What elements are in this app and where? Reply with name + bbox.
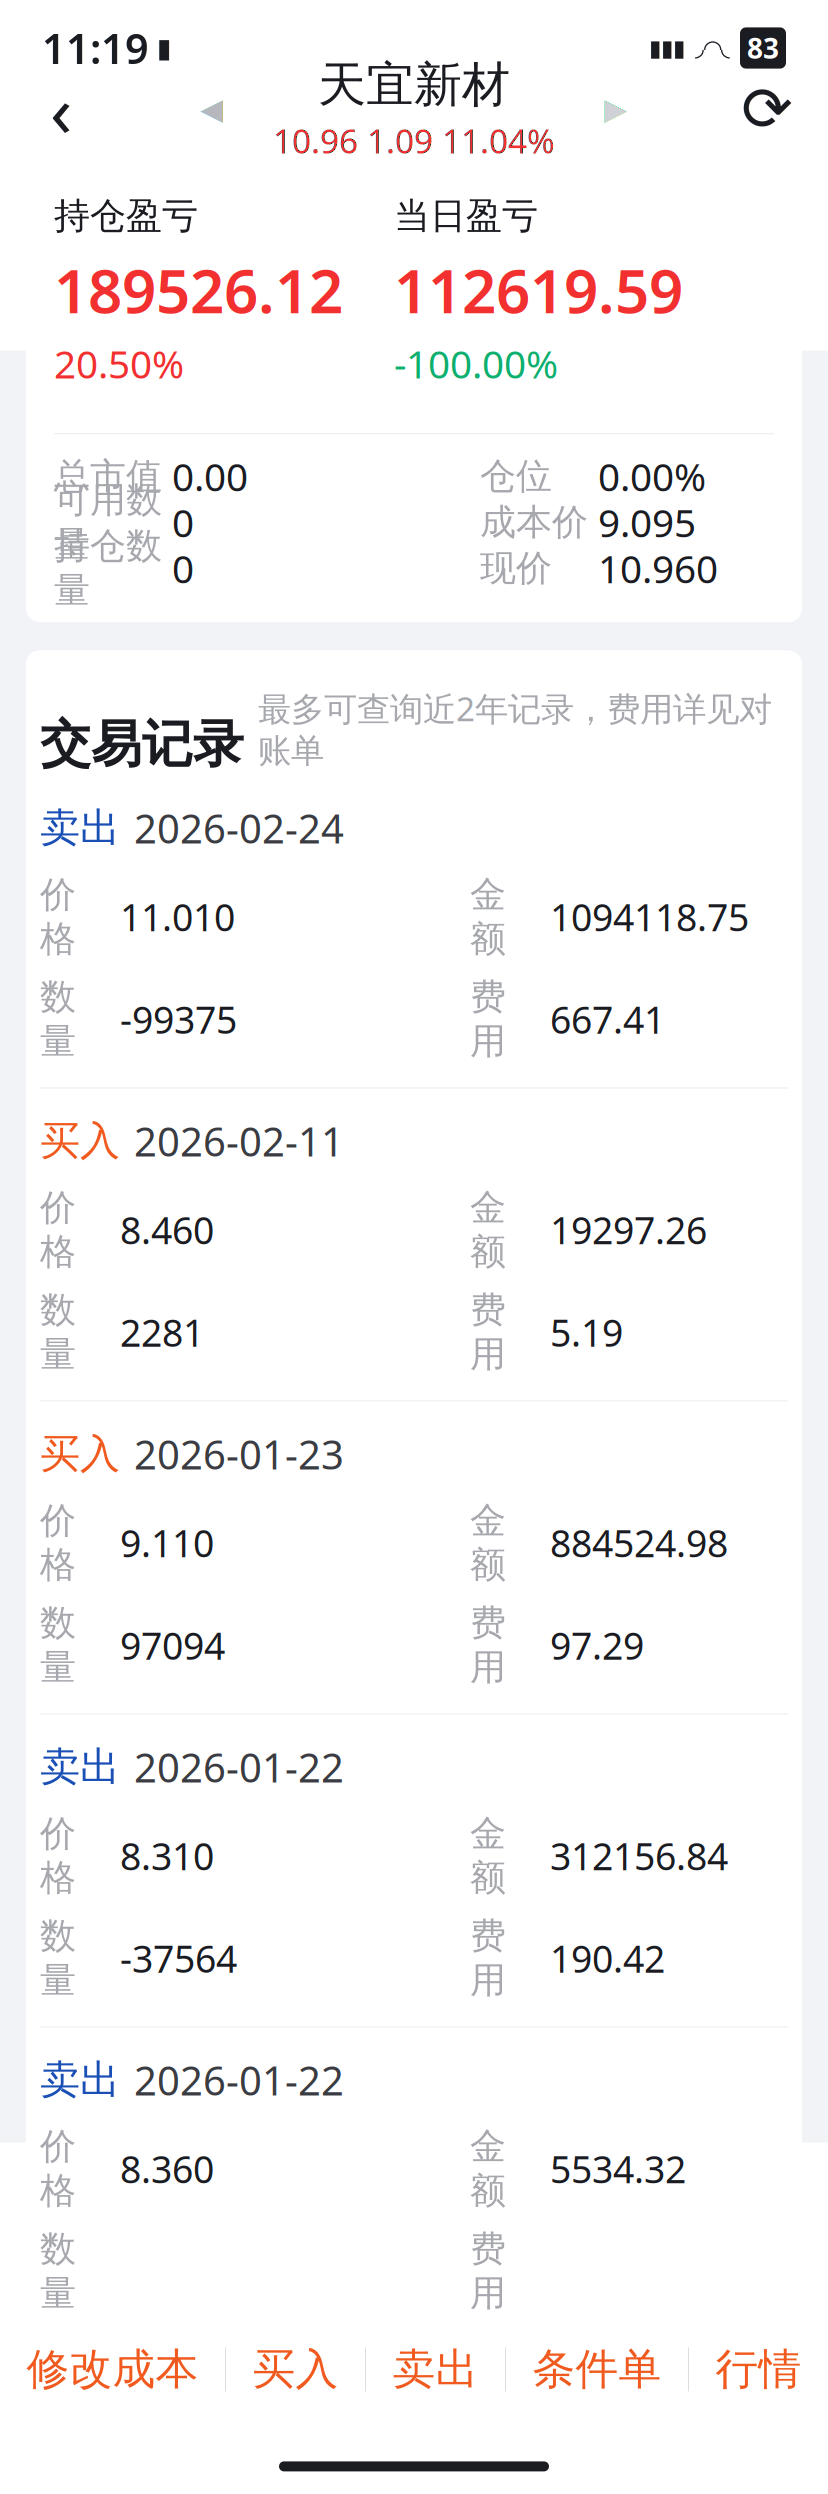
button[interactable]: 行情 xyxy=(715,2323,801,2416)
staticText: 2026-01-22 xyxy=(134,1740,344,1793)
staticText: 费用 xyxy=(470,1601,506,1689)
staticText: 11:19 xyxy=(42,21,149,75)
staticText: 1094118.75 xyxy=(550,892,749,942)
staticText: ▮▮▮ xyxy=(649,35,685,61)
staticText: 667.41 xyxy=(550,994,665,1044)
button[interactable]: Refresh xyxy=(732,74,802,144)
staticText: -37564 xyxy=(120,1933,237,1983)
button[interactable]: 条件单 xyxy=(532,2323,661,2416)
staticText: 费用 xyxy=(470,1914,506,2002)
staticText: -99375 xyxy=(120,994,237,1044)
staticText: 数量 xyxy=(40,1288,76,1376)
staticText: 19297.26 xyxy=(550,1205,707,1255)
staticText: 当日盈亏 xyxy=(394,194,538,238)
staticText: 9.110 xyxy=(120,1518,214,1568)
staticText: 0 xyxy=(172,543,194,594)
staticText: 天宜新材 xyxy=(318,55,510,114)
staticText: 0.00% xyxy=(598,451,706,502)
staticText: 买入 xyxy=(40,1429,120,1478)
button[interactable]: 买入 xyxy=(252,2323,338,2416)
staticText: 金额 xyxy=(470,1498,506,1587)
staticText: 卖出 xyxy=(392,2343,478,2396)
staticText: 11.010 xyxy=(120,892,235,942)
staticText: 价格 xyxy=(40,2124,76,2213)
staticText: 2026-02-11 xyxy=(134,1114,344,1167)
staticText: 金额 xyxy=(470,1186,506,1274)
staticText: 5.19 xyxy=(550,1307,623,1357)
button[interactable]: Previous stock xyxy=(182,79,242,139)
staticText: 卖出 xyxy=(40,1742,120,1791)
staticText: 0 xyxy=(172,497,194,548)
staticText: 持仓盈亏 xyxy=(54,194,198,238)
staticText: 修改成本 xyxy=(26,2343,198,2396)
staticText: 价格 xyxy=(40,1811,76,1900)
staticText: 数量 xyxy=(40,1601,76,1689)
staticText: 现价 xyxy=(480,546,552,590)
staticText: 97.29 xyxy=(550,1620,644,1670)
staticText: 8.310 xyxy=(120,1831,214,1881)
staticText: 费用 xyxy=(470,2227,506,2315)
staticText: 买入 xyxy=(252,2343,338,2396)
staticText: ◀ xyxy=(200,92,223,126)
staticText: 价格 xyxy=(40,1498,76,1587)
staticText: 金额 xyxy=(470,873,506,961)
staticText: 成本价 xyxy=(480,500,588,544)
staticText: 0.00 xyxy=(172,451,248,502)
button[interactable]: 卖出 xyxy=(392,2323,478,2416)
staticText: 卖出 xyxy=(40,2055,120,2104)
staticText: 189526.12 xyxy=(54,250,343,330)
staticText: 费用 xyxy=(470,1288,506,1376)
staticText: 5534.32 xyxy=(550,2144,686,2194)
staticText: 数量 xyxy=(40,975,76,1063)
staticText: 可用数量 xyxy=(54,478,162,566)
staticText: 9.095 xyxy=(598,497,696,548)
staticText: 条件单 xyxy=(532,2343,661,2396)
staticText: -100.00% xyxy=(394,338,558,389)
staticText: 总市值 xyxy=(54,454,162,498)
staticText: 交易记录 xyxy=(40,713,244,775)
staticText: 数量 xyxy=(40,2227,76,2315)
staticText: 83 xyxy=(747,29,779,67)
button[interactable]: Next stock xyxy=(586,79,646,139)
staticText: 884524.98 xyxy=(550,1518,728,1568)
staticText: ▮ xyxy=(157,33,172,63)
staticText: 数量 xyxy=(40,1914,76,2002)
staticText: 价格 xyxy=(40,873,76,961)
staticText: ▶ xyxy=(604,92,627,126)
staticText: 8.360 xyxy=(120,2144,214,2194)
staticText: 8.460 xyxy=(120,1205,214,1255)
staticText: 10.96 1.09 11.04% xyxy=(273,118,555,163)
staticText: 行情 xyxy=(715,2343,801,2396)
staticText: 2026-01-23 xyxy=(134,1427,344,1480)
staticText: 2026-02-24 xyxy=(134,801,344,854)
staticText: 买入 xyxy=(40,1116,120,1165)
staticText: 持仓数量 xyxy=(54,524,162,612)
staticText: 价格 xyxy=(40,1186,76,1274)
staticText: 2281 xyxy=(120,1307,204,1357)
staticText: 仓位 xyxy=(480,454,552,498)
staticText: 2026-01-22 xyxy=(134,2053,344,2106)
staticText: 金额 xyxy=(470,2124,506,2213)
staticText: 最多可查询近2年记录，费用详见对账单 xyxy=(258,686,772,771)
staticText: ◞◠◟ xyxy=(695,35,730,61)
staticText: 费用 xyxy=(470,975,506,1063)
staticText: 金额 xyxy=(470,1811,506,1900)
staticText: ‹ xyxy=(50,61,72,157)
staticText: 10.960 xyxy=(598,543,718,594)
staticText: 312156.84 xyxy=(550,1831,728,1881)
staticText: 卖出 xyxy=(40,803,120,852)
button[interactable]: 修改成本 xyxy=(26,2323,198,2416)
button[interactable]: Back xyxy=(26,74,96,144)
staticText: ⟳ xyxy=(741,74,792,144)
staticText: 112619.59 xyxy=(394,250,683,330)
staticText: 190.42 xyxy=(550,1933,665,1983)
staticText: 97094 xyxy=(120,1620,225,1670)
staticText: 20.50% xyxy=(54,338,184,389)
